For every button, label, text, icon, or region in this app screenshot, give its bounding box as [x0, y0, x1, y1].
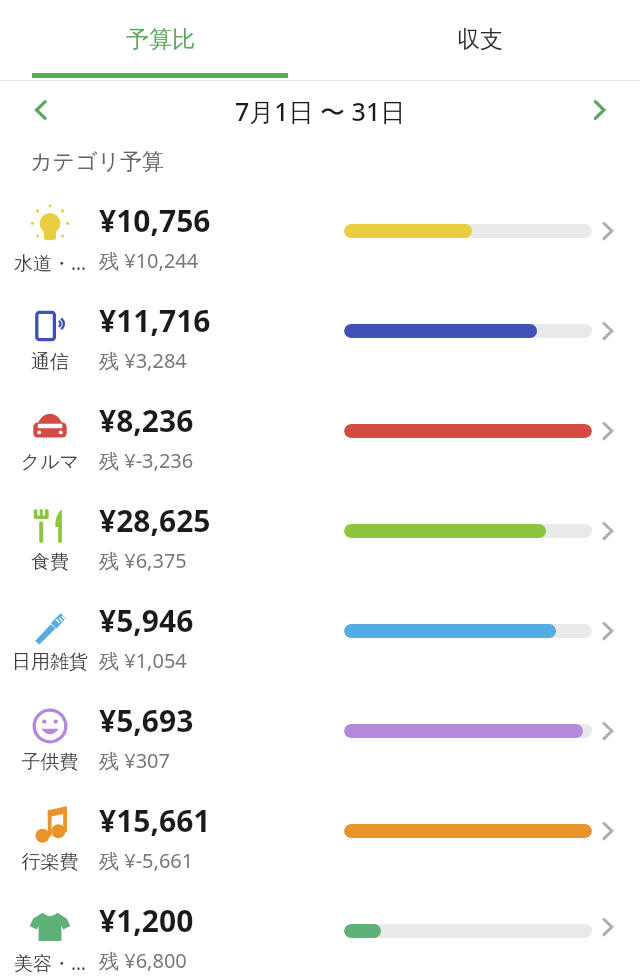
button[interactable]: 行楽費 — [0, 786, 640, 886]
staticText: 行楽費 — [8, 850, 92, 874]
staticText: 予算比 — [126, 25, 195, 54]
button[interactable]: 食費 — [0, 486, 640, 586]
staticText: ¥11,716 — [99, 300, 211, 341]
staticText: 残 ¥-5,661 — [99, 847, 194, 874]
button[interactable]: 収支 — [320, 0, 640, 78]
staticText: 美容・… — [8, 950, 92, 976]
staticText: 食費 — [8, 550, 92, 574]
staticText: 残 ¥10,244 — [99, 247, 199, 274]
staticText: 残 ¥307 — [99, 747, 170, 774]
staticText: 残 ¥-3,236 — [99, 447, 194, 474]
button[interactable]: 日用雑貨 — [0, 586, 640, 686]
staticText: ¥28,625 — [99, 500, 211, 541]
staticText: ¥5,693 — [99, 700, 194, 741]
button[interactable]: 水道・… — [0, 186, 640, 286]
staticText: 7月1日 〜 31日 — [235, 94, 406, 128]
button[interactable]: 予算比 — [0, 0, 320, 78]
staticText: 残 ¥3,284 — [99, 347, 187, 374]
button[interactable]: 美容・… — [0, 886, 640, 978]
staticText: 日用雑貨 — [8, 650, 92, 674]
staticText: 収支 — [457, 25, 503, 54]
staticText: クルマ — [8, 450, 92, 474]
staticText: ¥15,661 — [99, 800, 211, 841]
staticText: 残 ¥6,800 — [99, 947, 187, 974]
button[interactable]: クルマ — [0, 386, 640, 486]
staticText: 通信 — [8, 350, 92, 374]
button[interactable]: 子供費 — [0, 686, 640, 786]
button[interactable]: Previous month — [18, 87, 64, 133]
staticText: 子供費 — [8, 750, 92, 774]
staticText: カテゴリ予算 — [30, 148, 165, 176]
staticText: 残 ¥6,375 — [99, 547, 187, 574]
staticText: ¥5,946 — [99, 600, 194, 641]
staticText: 残 ¥1,054 — [99, 647, 187, 674]
staticText: ¥8,236 — [99, 400, 194, 441]
staticText: 水道・… — [8, 250, 92, 276]
staticText: ¥1,200 — [99, 900, 194, 941]
button[interactable]: Next month — [576, 87, 622, 133]
button[interactable]: 通信 — [0, 286, 640, 386]
staticText: ¥10,756 — [99, 200, 211, 241]
